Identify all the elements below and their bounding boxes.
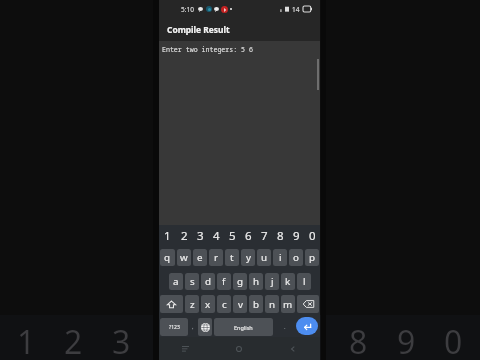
button[interactable]: m [281, 295, 295, 313]
button[interactable]: Change language [198, 318, 212, 336]
staticText: . [284, 323, 286, 331]
staticText: 0 [309, 228, 316, 243]
staticText: 3 [197, 228, 204, 243]
button[interactable]: 6 [240, 228, 256, 243]
staticText: 9 [397, 320, 416, 360]
staticText: a [173, 275, 179, 288]
staticText: r [214, 251, 219, 264]
staticText: n [269, 298, 276, 311]
button[interactable]: w [177, 249, 191, 266]
button[interactable]: e [193, 249, 207, 266]
staticText: q [164, 251, 171, 264]
button[interactable]: x [201, 295, 215, 313]
staticText: 2 [181, 228, 188, 243]
button[interactable]: p [305, 249, 319, 266]
staticText: 1 [17, 320, 36, 360]
button[interactable]: 4 [208, 228, 224, 243]
staticText: 3 [112, 320, 131, 360]
button[interactable]: r [209, 249, 223, 266]
button[interactable]: 7 [256, 228, 272, 243]
staticText: t [230, 251, 234, 264]
button[interactable]: c [217, 295, 231, 313]
staticText: 4 [159, 320, 178, 360]
button[interactable]: o [289, 249, 303, 266]
staticText: i [279, 251, 282, 264]
staticText: z [190, 298, 195, 311]
button[interactable]: v [233, 295, 247, 313]
staticText: 1 [164, 228, 171, 243]
staticText: 4 [213, 228, 220, 243]
staticText: g [237, 275, 244, 288]
staticText: b [253, 298, 260, 311]
staticText: 8 [277, 228, 284, 243]
staticText: c [222, 298, 227, 311]
staticText: d [205, 275, 212, 288]
button[interactable]: h [249, 273, 263, 290]
staticText: 7 [302, 320, 321, 360]
staticText: 5 [207, 320, 226, 360]
button[interactable]: 2 [176, 228, 192, 243]
button[interactable]: . [275, 318, 294, 336]
button[interactable]: Shift [160, 295, 183, 313]
staticText: ?123 [169, 324, 180, 331]
staticText: 5 [229, 228, 236, 243]
staticText: x [205, 298, 211, 311]
staticText: u [261, 251, 268, 264]
staticText: o [293, 251, 299, 264]
button[interactable]: Enter [296, 317, 318, 335]
staticText: k [285, 275, 291, 288]
staticText: 6 [245, 228, 252, 243]
button[interactable]: Backspace [297, 295, 319, 313]
staticText: English [234, 324, 253, 331]
staticText: 7 [261, 228, 268, 243]
staticText: l [303, 275, 306, 288]
staticText: 9 [293, 228, 300, 243]
button[interactable]: 0 [304, 228, 320, 243]
button[interactable]: y [241, 249, 255, 266]
button[interactable]: t [225, 249, 239, 266]
button[interactable]: k [281, 273, 295, 290]
button[interactable]: 9 [288, 228, 304, 243]
staticText: 8 [349, 320, 368, 360]
button[interactable]: b [249, 295, 263, 313]
button[interactable]: z [185, 295, 199, 313]
staticText: 14 [292, 5, 300, 14]
staticText: s [190, 275, 195, 288]
button[interactable]: 1 [159, 228, 176, 243]
staticText: 5:10 [181, 5, 194, 14]
button[interactable]: 3 [192, 228, 208, 243]
button[interactable]: s [185, 273, 199, 290]
staticText: 2 [64, 320, 83, 360]
button[interactable]: u [257, 249, 271, 266]
button[interactable]: 5 [224, 228, 240, 243]
staticText: h [253, 275, 260, 288]
button[interactable]: English [214, 318, 273, 336]
button[interactable]: 8 [272, 228, 288, 243]
staticText: , [192, 323, 194, 331]
button[interactable]: Recents [159, 337, 212, 360]
staticText: 0 [444, 320, 463, 360]
staticText: y [246, 251, 251, 264]
staticText: e [197, 251, 203, 264]
staticText: p [309, 251, 316, 264]
button[interactable]: q [160, 249, 175, 266]
staticText: j [271, 275, 274, 288]
button[interactable]: ?123 [160, 318, 188, 336]
button[interactable]: i [273, 249, 287, 266]
staticText: v [238, 298, 243, 311]
button[interactable]: f [217, 273, 231, 290]
button[interactable]: g [233, 273, 247, 290]
staticText: Compile Result [167, 24, 230, 35]
button[interactable]: , [190, 318, 196, 336]
staticText: f [222, 275, 226, 288]
button[interactable]: j [265, 273, 279, 290]
button[interactable]: a [169, 273, 183, 290]
button[interactable]: d [201, 273, 215, 290]
button[interactable]: l [297, 273, 311, 290]
staticText: 6 [254, 320, 273, 360]
staticText: Enter two integers: 5 6 [162, 45, 253, 54]
staticText: m [283, 298, 293, 311]
button[interactable]: n [265, 295, 279, 313]
button[interactable]: Home [212, 337, 266, 360]
